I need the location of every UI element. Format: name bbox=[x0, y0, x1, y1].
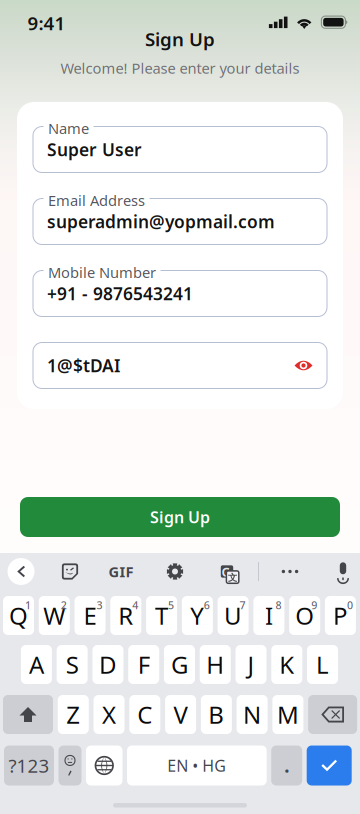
button[interactable]: More bbox=[275, 558, 305, 585]
staticText: ?123 bbox=[8, 753, 49, 778]
staticText: 2 bbox=[61, 598, 67, 612]
button[interactable]: P bbox=[325, 596, 356, 635]
button[interactable]: Voice input bbox=[328, 558, 358, 585]
button[interactable]: C bbox=[129, 695, 160, 734]
staticText: D bbox=[99, 649, 117, 680]
button[interactable]: O bbox=[289, 596, 320, 635]
button[interactable]: Z bbox=[58, 695, 89, 734]
button[interactable]: X bbox=[93, 695, 124, 734]
button[interactable]: M bbox=[272, 695, 303, 734]
button[interactable]: Q bbox=[3, 596, 34, 635]
staticText: O bbox=[295, 600, 314, 631]
staticText: Sign Up bbox=[150, 506, 210, 528]
staticText: Y bbox=[190, 600, 204, 631]
button[interactable]: A bbox=[21, 645, 52, 684]
staticText: N bbox=[243, 699, 261, 730]
button[interactable]: W bbox=[39, 596, 70, 635]
button[interactable]: D bbox=[92, 645, 123, 684]
staticText: L bbox=[316, 649, 329, 680]
staticText: GIF bbox=[108, 562, 133, 581]
button[interactable]: Y bbox=[182, 596, 213, 635]
button[interactable]: E bbox=[74, 596, 105, 635]
staticText: 0 bbox=[347, 598, 353, 612]
staticText: 3 bbox=[96, 598, 102, 612]
staticText: 4 bbox=[132, 598, 138, 612]
button[interactable]: Shift bbox=[3, 695, 53, 734]
button[interactable]: G bbox=[164, 645, 195, 684]
button[interactable]: L bbox=[307, 645, 338, 684]
staticText: A bbox=[29, 649, 44, 680]
staticText: Name bbox=[48, 118, 89, 138]
staticText: . bbox=[284, 753, 289, 778]
button[interactable]: Return bbox=[307, 745, 352, 785]
staticText: 7 bbox=[240, 598, 246, 612]
button[interactable] bbox=[4, 745, 54, 785]
staticText: Q bbox=[9, 600, 28, 631]
staticText: Z bbox=[66, 699, 80, 730]
staticText: 9 bbox=[311, 598, 317, 612]
button[interactable]: Switch language bbox=[86, 745, 122, 785]
staticText: J bbox=[247, 649, 254, 680]
button[interactable]: Period bbox=[271, 745, 302, 785]
button[interactable]: N bbox=[237, 695, 268, 734]
button[interactable]: H bbox=[200, 645, 231, 684]
button[interactable]: S bbox=[57, 645, 88, 684]
staticText: R bbox=[118, 600, 133, 631]
staticText: T bbox=[155, 600, 168, 631]
staticText: U bbox=[224, 600, 242, 631]
button[interactable]: 1@$tDAI bbox=[33, 342, 327, 388]
staticText: G bbox=[171, 649, 188, 680]
staticText: 1 bbox=[25, 598, 31, 612]
button[interactable]: J bbox=[235, 645, 266, 684]
button[interactable]: I bbox=[253, 596, 284, 635]
button[interactable]: T bbox=[146, 596, 177, 635]
staticText: 8 bbox=[275, 598, 281, 612]
button[interactable]: superadmin@yopmail.com bbox=[33, 198, 327, 244]
staticText: W bbox=[43, 600, 65, 631]
button[interactable]: +91 - 9876543241 bbox=[33, 270, 327, 316]
staticText: P bbox=[333, 600, 348, 631]
button[interactable]: Stickers bbox=[55, 558, 85, 585]
staticText: X bbox=[102, 699, 116, 730]
staticText: K bbox=[279, 649, 294, 680]
staticText: 6 bbox=[204, 598, 210, 612]
staticText: +91 - 9876543241 bbox=[47, 282, 193, 305]
staticText: Super User bbox=[47, 138, 142, 161]
staticText: Welcome! Please enter your details bbox=[60, 58, 299, 78]
staticText: 文 bbox=[228, 572, 237, 583]
button[interactable]: Sign Up bbox=[20, 497, 340, 537]
staticText: E bbox=[83, 600, 96, 631]
staticText: 5 bbox=[168, 598, 174, 612]
button[interactable]: Settings bbox=[160, 558, 190, 585]
staticText: Email Address bbox=[48, 190, 145, 210]
button[interactable]: U bbox=[218, 596, 249, 635]
button[interactable]: B bbox=[201, 695, 232, 734]
staticText: I bbox=[265, 600, 273, 631]
staticText: Mobile Number bbox=[48, 262, 156, 282]
staticText: H bbox=[206, 649, 224, 680]
staticText: B bbox=[208, 699, 224, 730]
button[interactable]: Back bbox=[7, 558, 34, 585]
staticText: M bbox=[277, 699, 299, 730]
button[interactable]: V bbox=[165, 695, 196, 734]
button[interactable]: Delete bbox=[308, 695, 357, 734]
button[interactable]: Emoji and comma bbox=[58, 745, 81, 785]
button[interactable]: Super User bbox=[33, 126, 327, 172]
staticText: 9:41 bbox=[28, 11, 66, 35]
staticText: EN • HG bbox=[167, 755, 226, 776]
staticText: G bbox=[221, 564, 230, 580]
button[interactable]: R bbox=[110, 596, 141, 635]
staticText: superadmin@yopmail.com bbox=[47, 210, 275, 233]
staticText: Sign Up bbox=[145, 27, 215, 51]
staticText: F bbox=[138, 649, 150, 680]
button[interactable]: Translate bbox=[212, 558, 242, 585]
button[interactable]: F bbox=[128, 645, 159, 684]
button[interactable]: GIF bbox=[104, 558, 138, 585]
button[interactable] bbox=[127, 745, 267, 785]
staticText: S bbox=[66, 649, 79, 680]
button[interactable]: K bbox=[271, 645, 302, 684]
staticText: V bbox=[174, 699, 188, 730]
staticText: C bbox=[137, 699, 152, 730]
staticText: 1@$tDAI bbox=[47, 354, 120, 377]
